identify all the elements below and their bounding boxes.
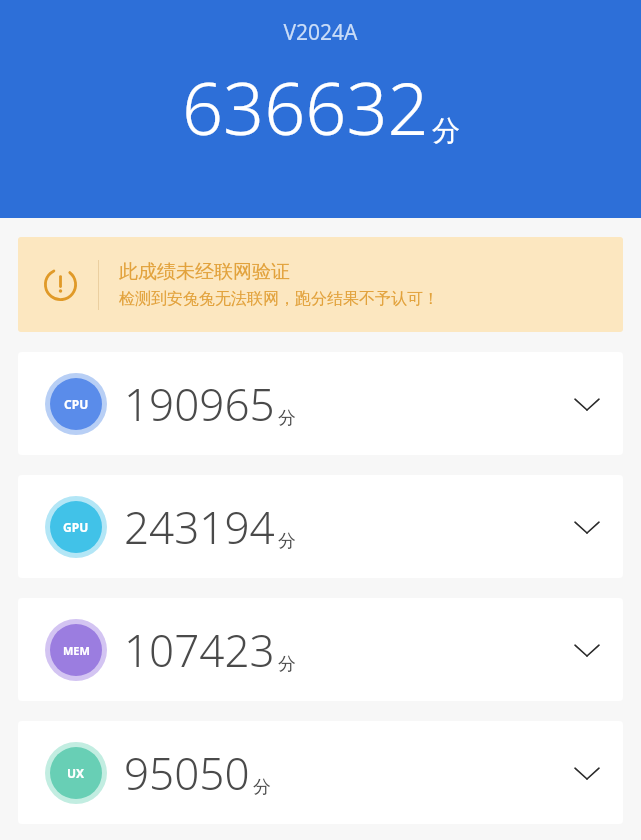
staticText: 分 xyxy=(278,653,296,676)
staticText: 此成绩未经联网验证 xyxy=(119,260,290,284)
other: Warning xyxy=(44,268,77,301)
button[interactable]: Warning xyxy=(18,237,623,332)
button[interactable]: MEM xyxy=(18,598,623,701)
button[interactable]: Expand UX details xyxy=(561,747,613,799)
staticText: 检测到安兔兔无法联网，跑分结果不予认可！ xyxy=(119,289,439,309)
staticText: GPU xyxy=(63,519,89,535)
button[interactable]: Expand GPU details xyxy=(561,501,613,553)
button[interactable]: Expand CPU details xyxy=(561,378,613,430)
staticText: 分 xyxy=(432,113,460,148)
staticText: 636632 xyxy=(182,58,429,156)
staticText: 243194 xyxy=(124,497,275,557)
staticText: MEM xyxy=(63,643,90,658)
staticText: 分 xyxy=(278,530,296,553)
button[interactable]: Expand MEM details xyxy=(561,624,613,676)
button[interactable]: UX xyxy=(18,721,623,824)
staticText: UX xyxy=(67,765,85,781)
staticText: 分 xyxy=(278,407,296,430)
staticText: 107423 xyxy=(124,620,275,680)
button[interactable]: GPU xyxy=(18,475,623,578)
button[interactable]: CPU xyxy=(18,352,623,455)
staticText: V2024A xyxy=(0,18,641,47)
staticText: 190965 xyxy=(124,374,275,434)
staticText: 分 xyxy=(253,776,271,799)
staticText: CPU xyxy=(64,396,89,412)
staticText: 95050 xyxy=(124,743,250,803)
